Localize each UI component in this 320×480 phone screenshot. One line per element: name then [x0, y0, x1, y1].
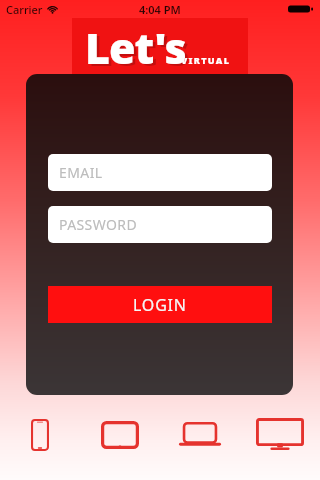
button[interactable]: EMAIL: [48, 154, 272, 191]
staticText: LOGIN: [133, 294, 187, 316]
button[interactable]: Phone: [0, 410, 80, 460]
staticText: PASSWORD: [59, 215, 138, 234]
staticText: VIRTUAL: [181, 54, 231, 66]
staticText: EMAIL: [59, 163, 103, 182]
button[interactable]: PASSWORD: [48, 206, 272, 243]
staticText: Carrier: [6, 2, 43, 17]
staticText: 4:04 PM: [139, 2, 181, 17]
button[interactable]: Laptop: [160, 410, 240, 460]
staticText: Let's: [88, 20, 189, 76]
button[interactable]: Tablet: [80, 410, 160, 460]
staticText: Let's: [85, 18, 186, 74]
button[interactable]: LOGIN: [48, 286, 272, 323]
button[interactable]: Desktop: [240, 410, 320, 460]
